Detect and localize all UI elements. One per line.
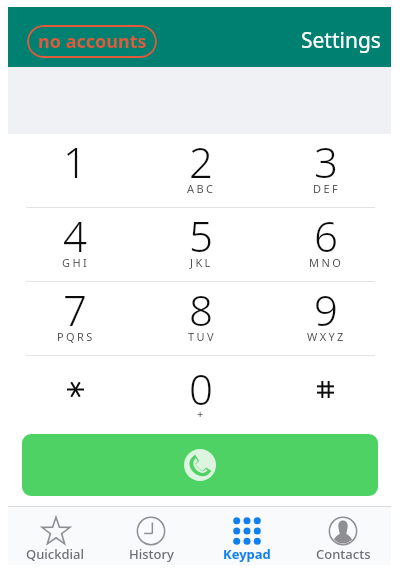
button[interactable]: Keypad	[199, 507, 295, 565]
staticText: DEF	[313, 181, 341, 196]
staticText: 1	[63, 133, 87, 190]
staticText: 0	[189, 360, 213, 417]
button[interactable]: 9	[263, 282, 388, 355]
staticText: History	[129, 545, 174, 563]
staticText: Settings	[301, 26, 381, 55]
staticText: Quickdial	[26, 545, 85, 563]
staticText: 3	[314, 133, 338, 190]
button[interactable]: 4	[12, 208, 138, 281]
other: Pound	[317, 381, 334, 398]
staticText: ABC	[187, 181, 216, 196]
staticText: MNO	[309, 255, 344, 270]
staticText: GHI	[62, 255, 90, 270]
staticText: 5	[189, 207, 213, 264]
button[interactable]: Pound	[263, 356, 388, 429]
button[interactable]: Contacts	[295, 507, 391, 565]
button[interactable]: 5	[138, 208, 263, 281]
staticText: 8	[189, 281, 213, 338]
button[interactable]: 6	[263, 208, 388, 281]
button[interactable]: no accounts	[27, 25, 157, 58]
staticText: WXYZ	[307, 329, 346, 344]
button[interactable]: Quickdial	[8, 507, 103, 565]
staticText: 6	[314, 207, 338, 264]
staticText: Contacts	[316, 545, 371, 563]
button[interactable]: 2	[138, 134, 263, 207]
button[interactable]: 0	[138, 356, 263, 429]
button[interactable]: History	[103, 507, 199, 565]
staticText: 4	[63, 207, 87, 264]
button[interactable]: 8	[138, 282, 263, 355]
button[interactable]: Call	[22, 434, 378, 496]
staticText: PQRS	[57, 329, 95, 344]
other: Star	[67, 381, 84, 398]
staticText: 7	[63, 281, 87, 338]
staticText: JKL	[190, 255, 213, 270]
button[interactable]: Settings	[301, 26, 381, 55]
button[interactable]: 7	[12, 282, 138, 355]
staticText: +	[197, 406, 206, 421]
staticText: 9	[314, 281, 338, 338]
button[interactable]: 3	[263, 134, 388, 207]
staticText: no accounts	[38, 29, 147, 54]
staticText: Keypad	[223, 545, 271, 563]
staticText: 2	[189, 133, 213, 190]
button[interactable]: 1	[12, 134, 138, 207]
staticText: TUV	[188, 329, 216, 344]
button[interactable]: Star	[12, 356, 138, 429]
